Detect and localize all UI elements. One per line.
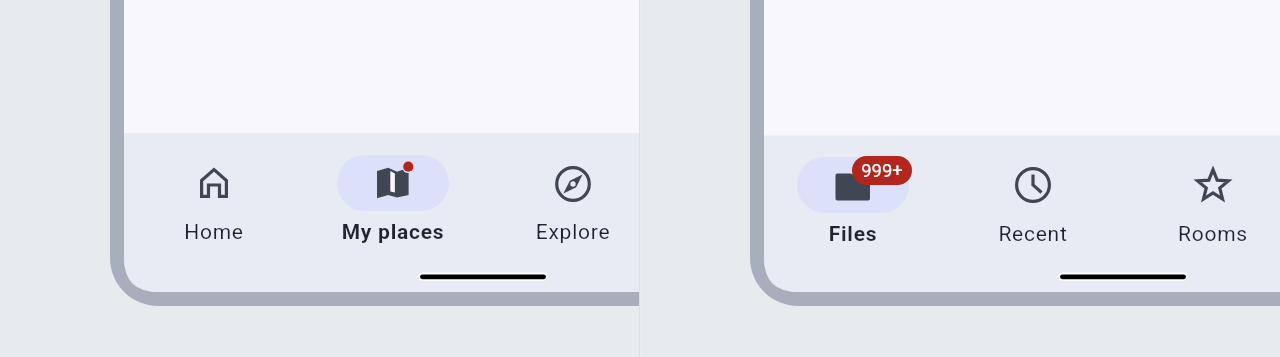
button[interactable]: My places	[337, 155, 449, 245]
staticText: Recent	[977, 222, 1089, 247]
staticText: My places	[337, 220, 449, 245]
button[interactable]: Explore	[517, 155, 629, 245]
staticText: Explore	[517, 220, 629, 245]
staticText: Files	[797, 222, 909, 247]
staticText: 999+	[852, 160, 912, 182]
staticText: Home	[158, 220, 270, 245]
button[interactable]: Rooms	[1157, 157, 1269, 247]
staticText: Rooms	[1157, 222, 1269, 247]
button[interactable]: Recent	[977, 157, 1089, 247]
button[interactable]: Files	[797, 157, 909, 247]
button[interactable]: Home	[158, 155, 270, 245]
